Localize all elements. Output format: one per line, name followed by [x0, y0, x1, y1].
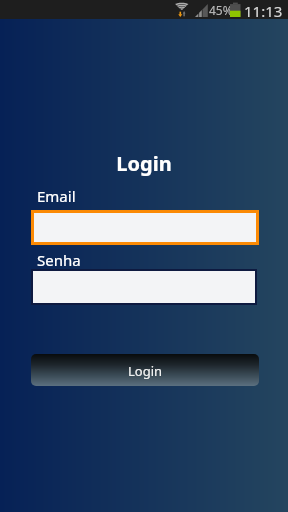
staticText: Email — [37, 186, 76, 206]
staticText: Login — [0, 150, 288, 177]
staticText: 11:13 — [244, 1, 283, 20]
staticText: Senha — [37, 250, 81, 270]
button[interactable]: Login — [31, 354, 259, 386]
staticText: Login — [128, 362, 163, 380]
staticText: 45% — [209, 2, 233, 18]
